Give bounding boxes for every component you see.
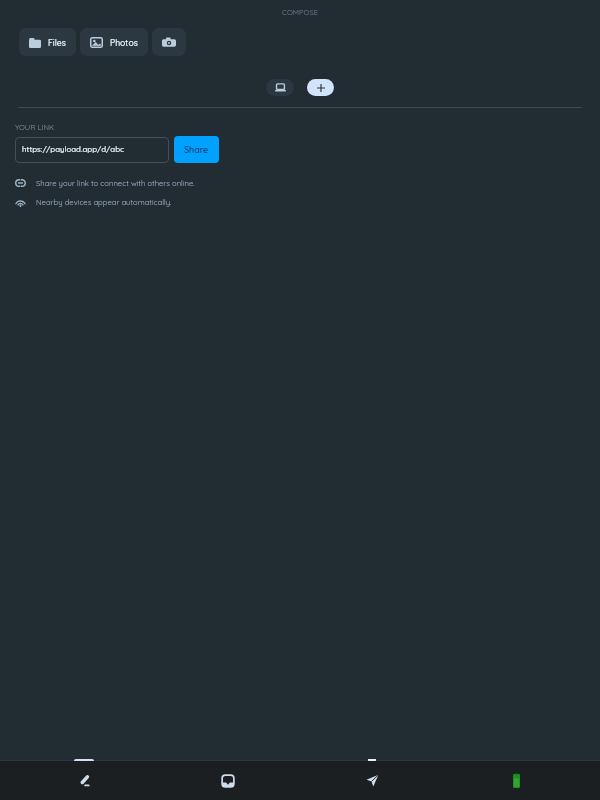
staticText: https://payload.app/d/abc [22, 144, 125, 154]
staticText: Nearby devices appear automatically. [36, 197, 172, 207]
button[interactable]: Inbox [156, 761, 300, 800]
button[interactable]: Camera [152, 28, 186, 56]
staticText: Photos [110, 37, 138, 48]
button[interactable]: Share [174, 136, 219, 163]
button[interactable]: Files [19, 28, 76, 56]
button[interactable]: Compose [12, 761, 156, 800]
staticText: Share your link to connect with others o… [36, 178, 195, 188]
staticText: Share [184, 144, 209, 155]
button[interactable]: Desktop [266, 79, 294, 96]
button[interactable]: Photos [80, 28, 148, 56]
staticText: COMPOSE [282, 7, 318, 16]
staticText: YOUR LINK [15, 122, 55, 131]
button[interactable]: Send [300, 761, 444, 800]
button[interactable]: Add [307, 79, 334, 96]
button[interactable]: Device [444, 761, 588, 800]
staticText: Files [48, 37, 66, 48]
